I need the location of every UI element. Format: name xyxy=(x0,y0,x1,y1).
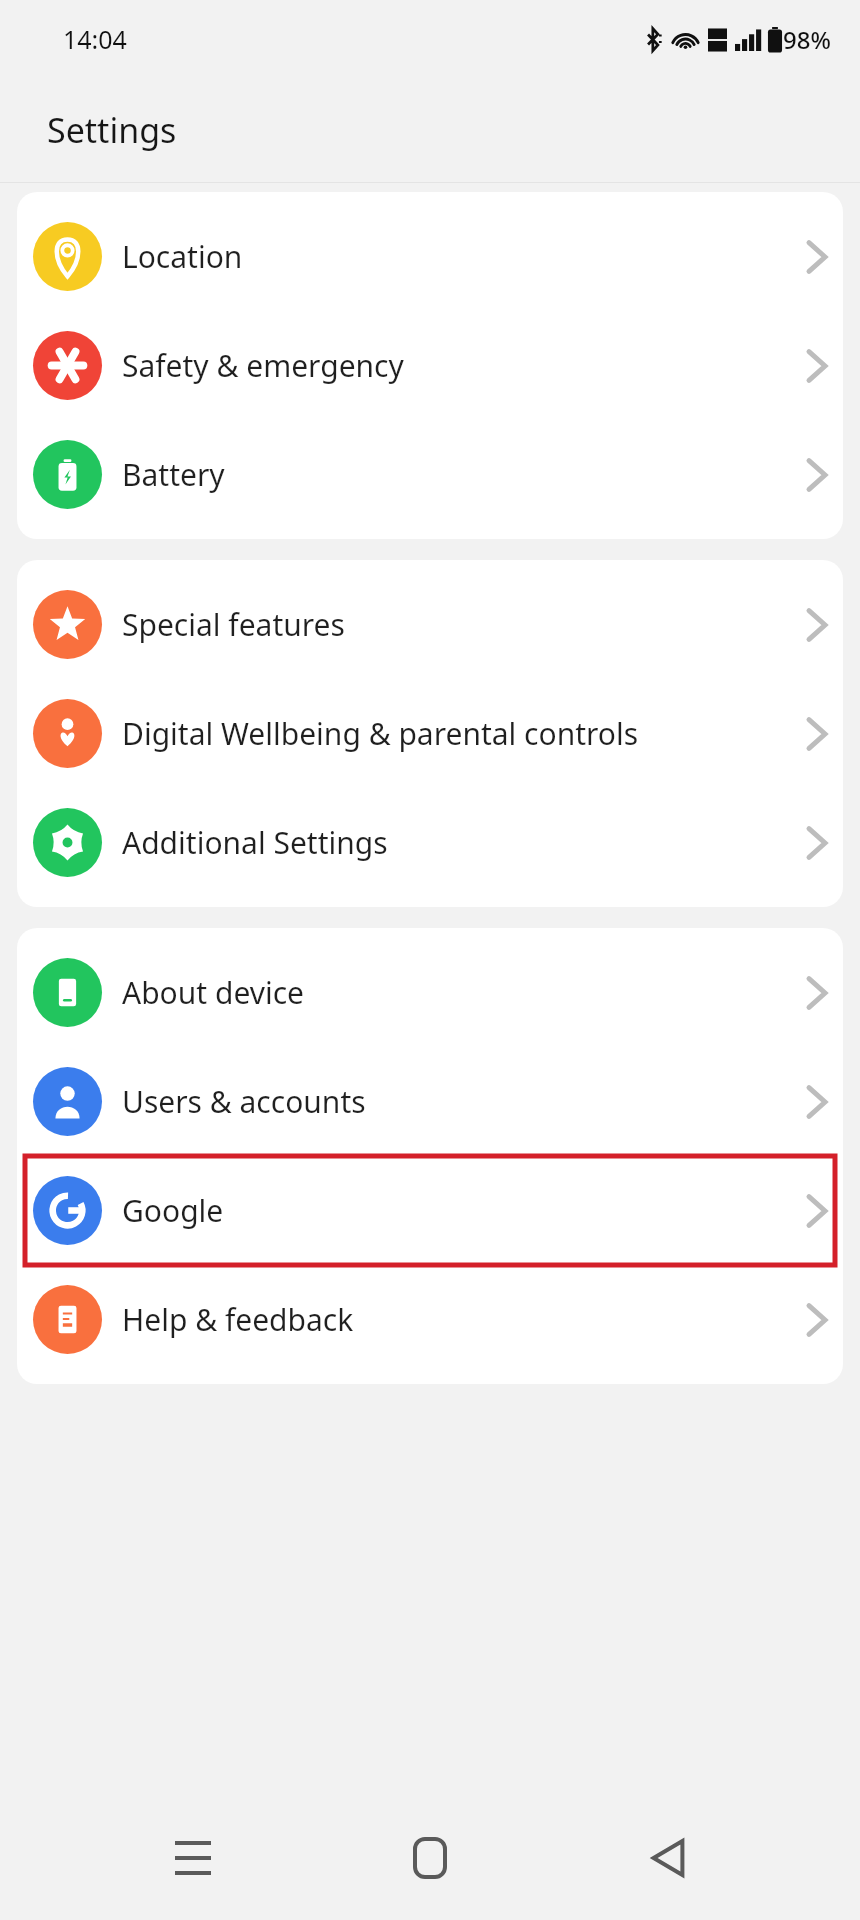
staticText: Users & accounts xyxy=(122,1081,789,1122)
button[interactable]: Google xyxy=(17,1156,843,1265)
button[interactable]: Safety & emergency xyxy=(17,311,843,420)
staticText: Safety & emergency xyxy=(122,345,789,386)
staticText: Location xyxy=(122,236,789,277)
button[interactable]: Home xyxy=(385,1813,475,1903)
button[interactable]: Recent apps xyxy=(148,1813,238,1903)
button[interactable]: Digital Wellbeing & parental controls xyxy=(17,679,843,788)
button[interactable]: About device xyxy=(17,938,843,1047)
button[interactable]: Additional Settings xyxy=(17,788,843,897)
staticText: Google xyxy=(122,1190,789,1231)
button[interactable]: Help & feedback xyxy=(17,1265,843,1374)
staticText: Battery xyxy=(122,454,789,495)
staticText: 98% xyxy=(783,23,831,56)
staticText: Digital Wellbeing & parental controls xyxy=(122,713,789,754)
button[interactable]: Battery xyxy=(17,420,843,529)
button[interactable]: Back xyxy=(623,1813,713,1903)
staticText: 14:04 xyxy=(63,22,127,56)
staticText: Special features xyxy=(122,604,789,645)
staticText: About device xyxy=(122,972,789,1013)
button[interactable]: Location xyxy=(17,202,843,311)
staticText: Additional Settings xyxy=(122,822,789,863)
button[interactable]: Users & accounts xyxy=(17,1047,843,1156)
staticText: Settings xyxy=(47,107,177,153)
staticText: Help & feedback xyxy=(122,1299,789,1340)
button[interactable]: Special features xyxy=(17,570,843,679)
